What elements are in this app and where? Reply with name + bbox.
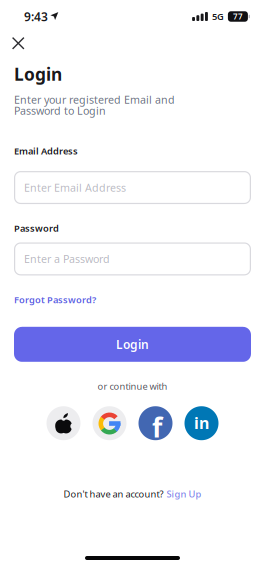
button[interactable] — [92, 406, 126, 440]
button[interactable]: Forgot Password? — [14, 293, 96, 306]
staticText: Password to Login — [14, 103, 106, 118]
staticText: f — [152, 409, 162, 445]
staticText: Email Address — [14, 145, 78, 157]
button[interactable]: Login — [14, 327, 251, 362]
staticText: Sign Up — [166, 488, 201, 500]
staticText: Login — [14, 62, 62, 85]
staticText: 5G — [212, 10, 224, 23]
button[interactable]: Enter Email Address — [14, 171, 251, 204]
staticText: Forgot Password? — [14, 293, 96, 306]
staticText: Enter a Password — [24, 252, 110, 266]
staticText: 77 — [233, 11, 243, 22]
button[interactable]: in — [184, 406, 218, 440]
staticText: Don't have an account? — [63, 488, 163, 500]
button[interactable] — [8, 33, 28, 53]
staticText: Enter Email Address — [24, 180, 126, 195]
button[interactable]: Enter a Password — [14, 242, 251, 275]
button[interactable] — [46, 406, 80, 440]
staticText: or continue with — [97, 380, 167, 392]
button[interactable]: f — [138, 406, 172, 440]
staticText: Enter your registered Email and — [14, 92, 175, 107]
button[interactable]: Don't have an account? — [63, 488, 201, 500]
staticText: Password — [14, 222, 59, 234]
staticText: 9:43 — [24, 8, 48, 24]
staticText: Login — [116, 336, 149, 352]
staticText: in — [194, 412, 209, 433]
